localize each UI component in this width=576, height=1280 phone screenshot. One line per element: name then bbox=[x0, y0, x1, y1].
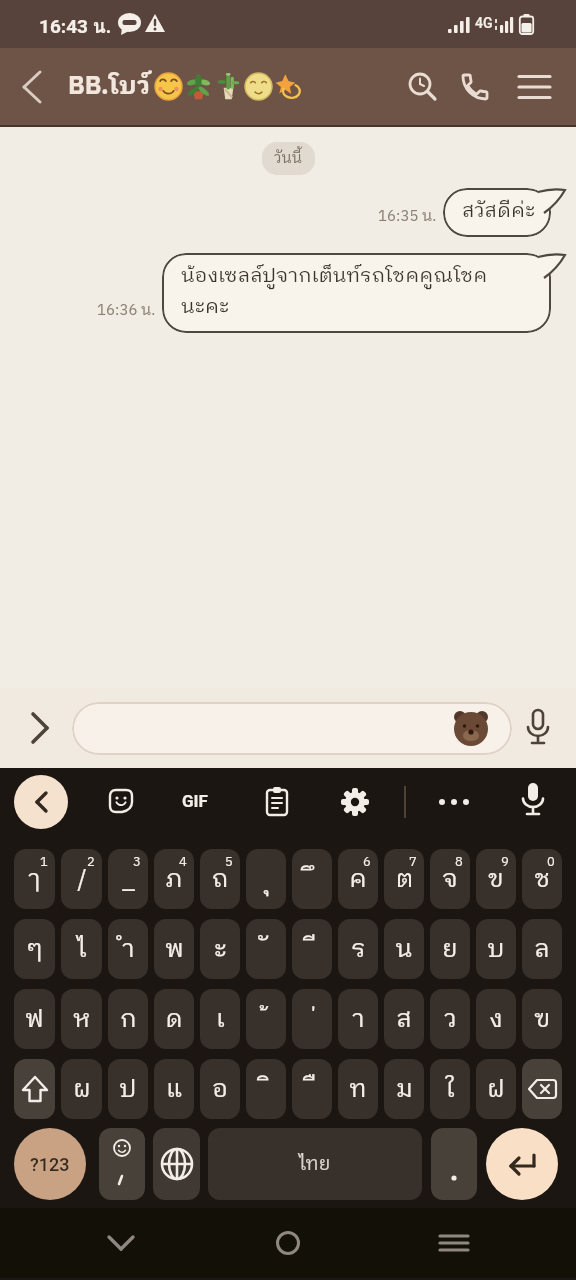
staticText: 2 bbox=[87, 851, 95, 872]
button[interactable]: ส bbox=[384, 989, 424, 1049]
button[interactable] bbox=[512, 48, 556, 125]
button[interactable]: จ bbox=[430, 849, 470, 909]
staticText: BB.โบว์ bbox=[68, 66, 151, 107]
button[interactable] bbox=[14, 68, 54, 108]
button[interactable]: ผ bbox=[61, 1059, 102, 1119]
staticText: น bbox=[395, 929, 413, 970]
button[interactable] bbox=[153, 1128, 200, 1200]
button[interactable] bbox=[486, 1128, 558, 1200]
staticText: 9 bbox=[501, 851, 509, 872]
button[interactable]: ร bbox=[338, 919, 378, 979]
staticText: ล bbox=[534, 929, 550, 970]
button[interactable]: ะ bbox=[200, 919, 240, 979]
button[interactable]: ื bbox=[292, 1059, 332, 1119]
staticText: 4G bbox=[475, 15, 493, 31]
button[interactable]: ด bbox=[154, 989, 194, 1049]
button[interactable]: ฟ bbox=[14, 989, 55, 1049]
button[interactable] bbox=[16, 704, 64, 752]
button[interactable]: ไทย bbox=[208, 1128, 422, 1200]
button[interactable]: ำ bbox=[108, 919, 148, 979]
button[interactable]: ห bbox=[61, 989, 102, 1049]
button[interactable]: วันนี้ bbox=[274, 146, 303, 171]
button[interactable]: ้ bbox=[246, 989, 286, 1049]
button[interactable] bbox=[436, 784, 472, 820]
button[interactable]: ม bbox=[384, 1059, 424, 1119]
button[interactable] bbox=[98, 1220, 144, 1266]
staticText: ใ bbox=[445, 1069, 455, 1110]
button[interactable]: ก bbox=[108, 989, 148, 1049]
button[interactable] bbox=[515, 782, 551, 818]
button[interactable]: ๆ bbox=[14, 919, 55, 979]
staticText: ี bbox=[309, 929, 315, 970]
button[interactable]: ป bbox=[108, 1059, 148, 1119]
button[interactable] bbox=[516, 700, 560, 756]
staticText: ห bbox=[73, 999, 91, 1040]
staticText: ค bbox=[349, 859, 367, 900]
button[interactable] bbox=[259, 784, 295, 820]
staticText: น้องเซลล์ปูจากเต็นท์รถโชคคูณโชค นะคะ bbox=[181, 260, 488, 324]
button[interactable]: อ bbox=[200, 1059, 240, 1119]
button[interactable]: า bbox=[338, 989, 378, 1049]
button[interactable]: ฃ bbox=[522, 989, 562, 1049]
button[interactable]: _ bbox=[108, 849, 148, 909]
button[interactable]: ข bbox=[476, 849, 516, 909]
staticText: ไ bbox=[77, 929, 87, 970]
button[interactable]: สวัสดีค่ะ bbox=[462, 195, 536, 228]
staticText: ช bbox=[534, 859, 551, 900]
button[interactable] bbox=[403, 48, 443, 125]
staticText: 16:43 น. bbox=[39, 11, 112, 41]
button[interactable]: ึ bbox=[292, 849, 332, 909]
button[interactable]: ๅ bbox=[14, 849, 55, 909]
button[interactable]: น bbox=[384, 919, 424, 979]
button[interactable]: ใ bbox=[430, 1059, 470, 1119]
button[interactable] bbox=[99, 1128, 145, 1200]
staticText: ๆ bbox=[27, 929, 43, 970]
button[interactable]: ถ bbox=[200, 849, 240, 909]
button[interactable] bbox=[522, 1059, 562, 1119]
button[interactable] bbox=[431, 1220, 477, 1266]
button[interactable]: ต bbox=[384, 849, 424, 909]
button[interactable] bbox=[104, 784, 140, 820]
button[interactable]: ฝ bbox=[476, 1059, 516, 1119]
button[interactable]: ค bbox=[338, 849, 378, 909]
button[interactable]: เ bbox=[200, 989, 240, 1049]
button[interactable]: ิ bbox=[246, 1059, 286, 1119]
staticText: ผ bbox=[73, 1069, 91, 1110]
staticText: ะ bbox=[214, 929, 227, 970]
staticText: ุ bbox=[263, 859, 269, 900]
button[interactable] bbox=[14, 1059, 55, 1119]
button[interactable]: ว bbox=[430, 989, 470, 1049]
button[interactable]: ี bbox=[292, 919, 332, 979]
button[interactable]: น้องเซลล์ปูจากเต็นท์รถโชคคูณโชค นะคะ bbox=[181, 260, 536, 324]
button[interactable]: ย bbox=[430, 919, 470, 979]
button[interactable]: แ bbox=[154, 1059, 194, 1119]
staticText: อ bbox=[212, 1069, 228, 1110]
button[interactable]: ภ bbox=[154, 849, 194, 909]
button[interactable]: / bbox=[61, 849, 102, 909]
button[interactable] bbox=[337, 784, 373, 820]
button[interactable]: ไ bbox=[61, 919, 102, 979]
button[interactable]: ท bbox=[338, 1059, 378, 1119]
button[interactable]: บ bbox=[476, 919, 516, 979]
staticText: า bbox=[352, 999, 365, 1040]
button[interactable] bbox=[431, 1128, 477, 1200]
staticText: 8 bbox=[455, 851, 463, 872]
button[interactable]: ่ bbox=[292, 989, 332, 1049]
staticText: พ bbox=[165, 929, 184, 970]
button[interactable] bbox=[455, 48, 495, 125]
staticText: GIF bbox=[182, 791, 208, 811]
button[interactable]: ช bbox=[522, 849, 562, 909]
button[interactable]: ง bbox=[476, 989, 516, 1049]
staticText: 6 bbox=[363, 851, 371, 872]
button[interactable]: ?123 bbox=[14, 1128, 86, 1200]
button[interactable] bbox=[14, 775, 68, 829]
button[interactable]: ั bbox=[246, 919, 286, 979]
button[interactable] bbox=[265, 1220, 311, 1266]
button[interactable]: พ bbox=[154, 919, 194, 979]
button[interactable]: ุ bbox=[246, 849, 286, 909]
button[interactable]: ล bbox=[522, 919, 562, 979]
button[interactable] bbox=[72, 702, 512, 755]
staticText: ๅ bbox=[28, 859, 41, 900]
staticText: ท bbox=[349, 1069, 367, 1110]
staticText: ภ bbox=[165, 859, 183, 900]
